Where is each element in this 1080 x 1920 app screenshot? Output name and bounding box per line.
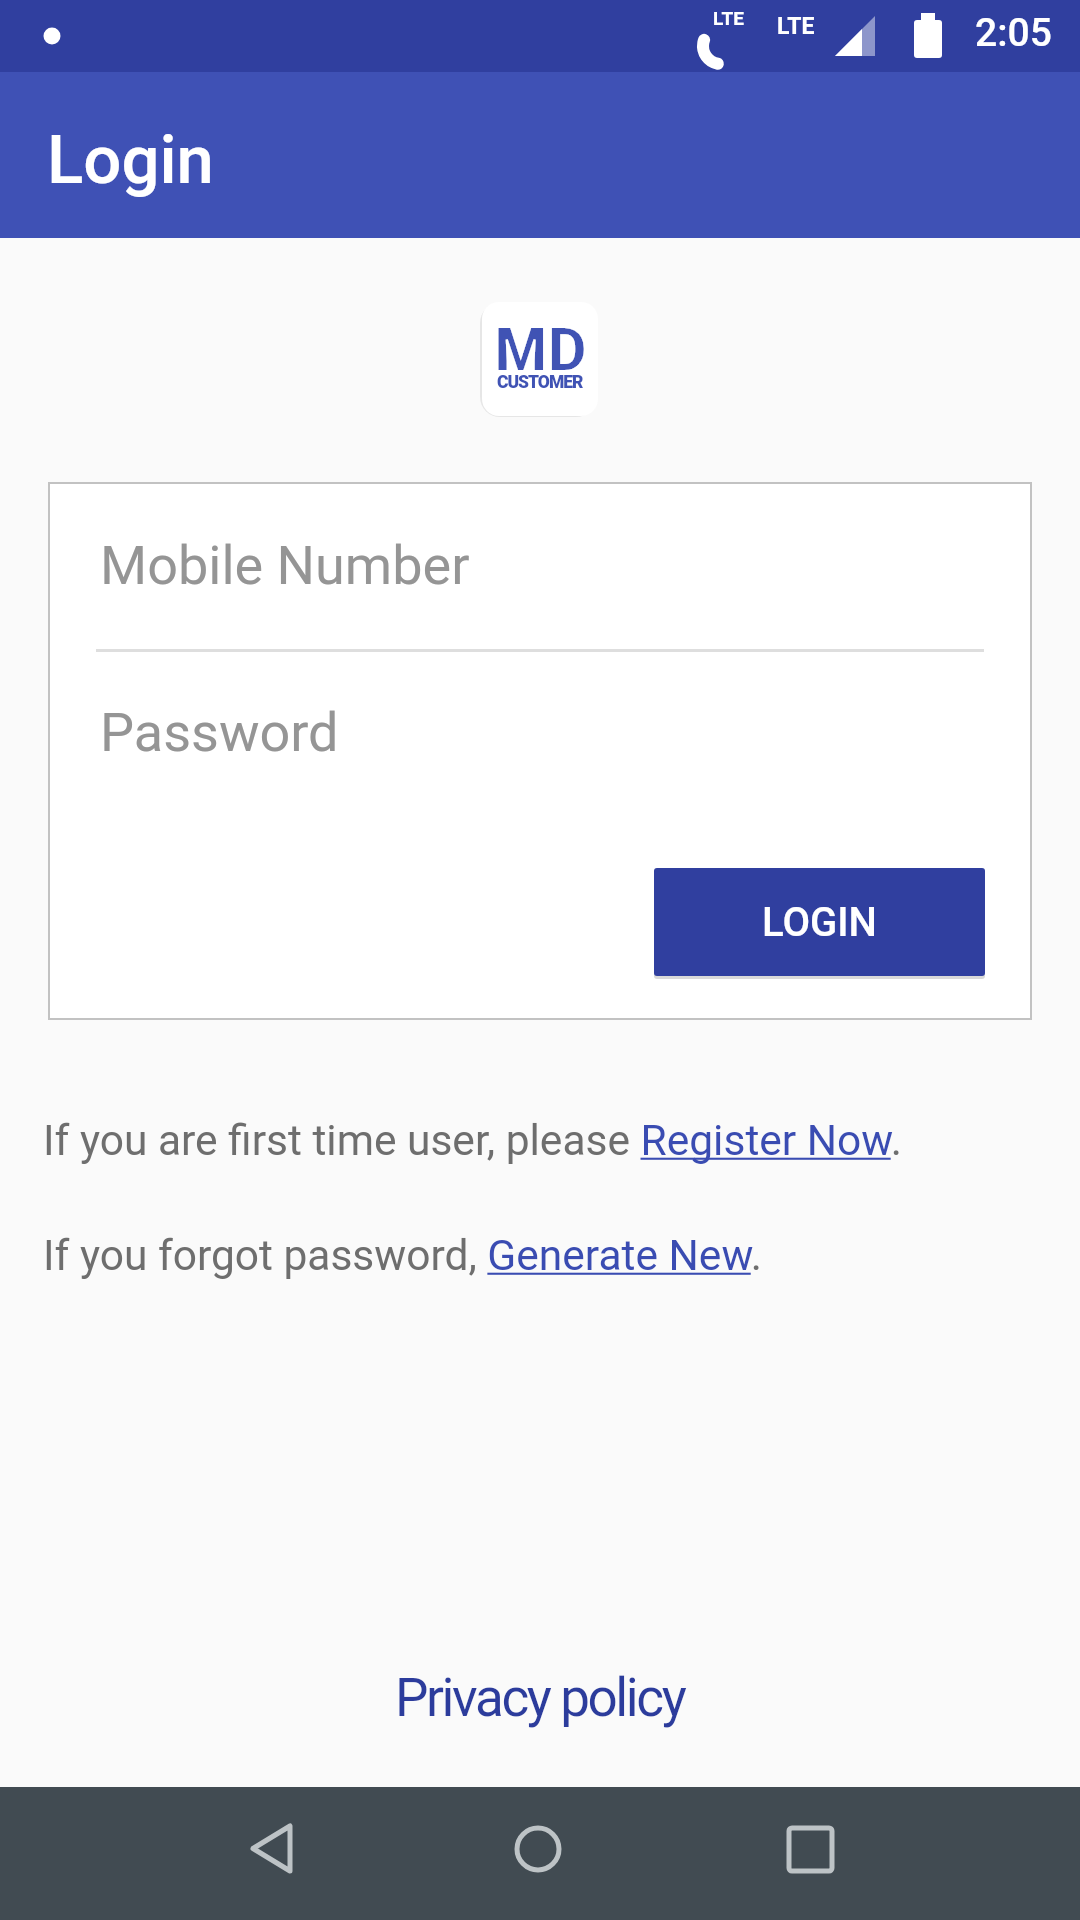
button[interactable]: Mobile Number bbox=[96, 489, 984, 642]
button[interactable]: If you are first time user, please Regis… bbox=[43, 1116, 902, 1166]
staticText: LTE bbox=[777, 13, 815, 40]
button[interactable]: If you forgot password, Generate New. bbox=[43, 1231, 762, 1281]
staticText: MD bbox=[494, 314, 587, 385]
button[interactable]: Privacy policy bbox=[395, 1667, 685, 1729]
staticText: 2:05 bbox=[975, 10, 1052, 56]
staticText: LOGIN bbox=[762, 899, 877, 946]
button[interactable]: Password bbox=[96, 652, 984, 812]
staticText: LTE bbox=[713, 7, 744, 29]
button[interactable] bbox=[720, 1787, 1080, 1920]
button[interactable] bbox=[0, 1787, 360, 1920]
staticText: Password bbox=[100, 701, 339, 764]
staticText: MD bbox=[494, 314, 587, 385]
staticText: CUSTOMER bbox=[497, 372, 583, 393]
button[interactable]: MD bbox=[482, 302, 598, 416]
button[interactable]: LOGIN bbox=[654, 868, 985, 976]
staticText: Mobile Number bbox=[100, 534, 470, 597]
staticText: Login bbox=[47, 121, 214, 200]
button[interactable] bbox=[360, 1787, 720, 1920]
